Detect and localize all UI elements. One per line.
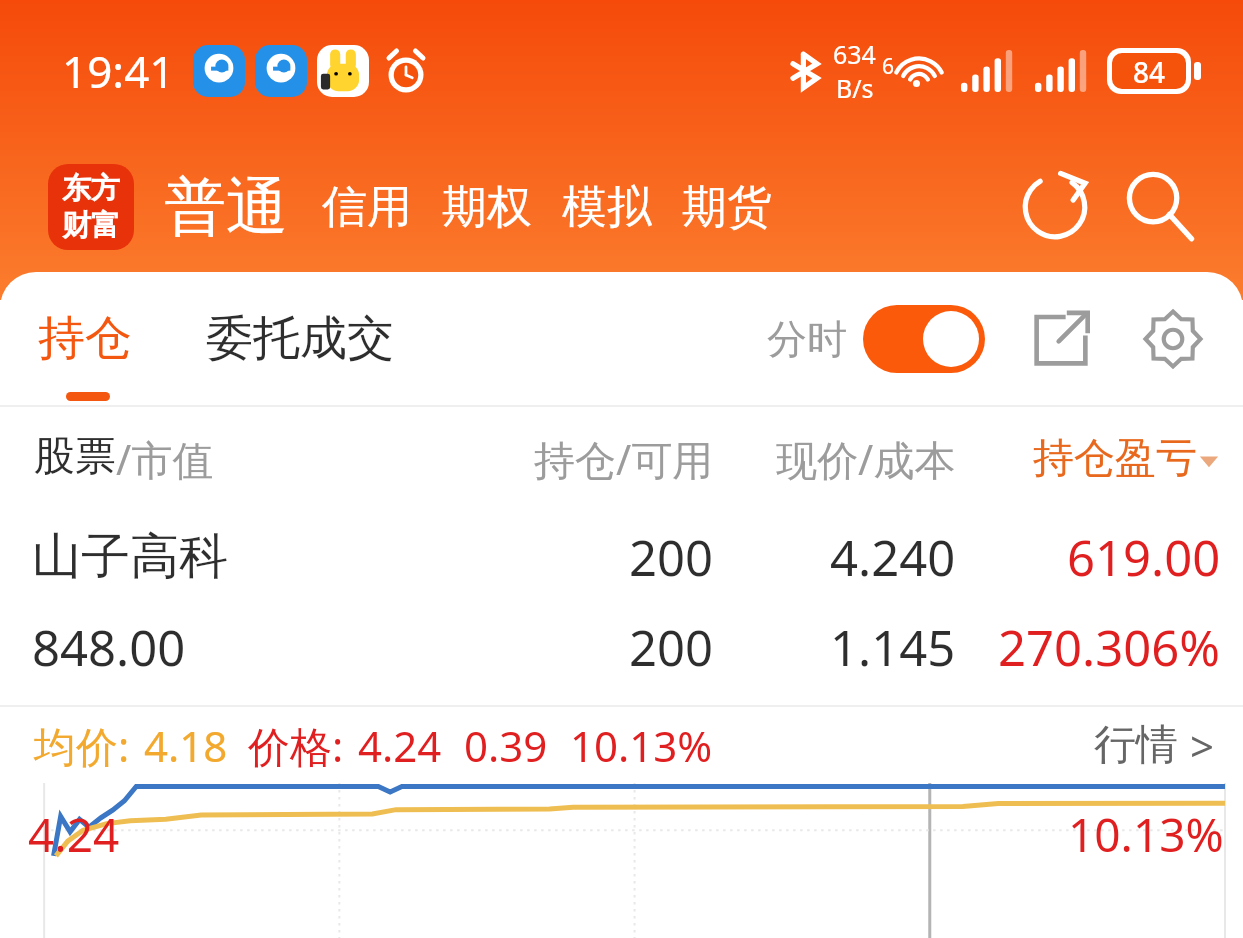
staticText: 200: [629, 614, 714, 681]
staticText: 持仓盈亏: [1033, 433, 1197, 485]
staticText: 6: [882, 52, 895, 81]
staticText: 4.24: [28, 803, 120, 866]
staticText: 山子高科: [32, 526, 228, 588]
staticText: 价格:: [248, 717, 344, 774]
button[interactable]: 期权: [438, 169, 536, 246]
button[interactable]: Refresh: [1009, 161, 1101, 253]
button[interactable]: Share: [1021, 299, 1101, 379]
staticText: 模拟: [562, 179, 652, 236]
staticText: 619.00: [1067, 524, 1221, 591]
staticText: 股票: [34, 431, 116, 483]
staticText: /市值: [116, 431, 214, 487]
staticText: 84: [1133, 53, 1166, 89]
staticText: B/s: [836, 71, 874, 105]
staticText: 行情: [1094, 719, 1178, 772]
staticText: 4.240: [830, 524, 956, 591]
staticText: 财富: [62, 207, 120, 244]
button[interactable]: 期货: [678, 169, 776, 246]
staticText: 持仓/可用: [534, 431, 714, 487]
staticText: 信用: [322, 179, 412, 236]
staticText: 10.13%: [570, 717, 713, 774]
button[interactable]: 东方: [48, 164, 134, 250]
button[interactable]: Chart toggle: [863, 305, 985, 373]
staticText: 848.00: [32, 614, 186, 681]
button[interactable]: Search: [1111, 159, 1207, 255]
staticText: 200: [629, 524, 714, 591]
staticText: 普通: [164, 168, 288, 246]
button[interactable]: 模拟: [558, 169, 656, 246]
staticText: 均价:: [34, 717, 130, 774]
staticText: 634: [833, 37, 876, 71]
staticText: 期权: [442, 179, 532, 236]
staticText: 0.39: [464, 717, 548, 774]
button[interactable]: 持仓: [34, 299, 136, 378]
staticText: 东方: [62, 170, 120, 207]
button[interactable]: 委托成交: [202, 299, 398, 378]
button[interactable]: Settings: [1131, 297, 1215, 381]
staticText: 期货: [682, 179, 772, 236]
button[interactable]: 持仓盈亏: [956, 433, 1221, 485]
button[interactable]: 山子高科: [0, 511, 1243, 705]
staticText: 4.24: [358, 717, 442, 774]
staticText: 2.05: [34, 935, 118, 938]
button[interactable]: 信用: [318, 169, 416, 246]
staticText: 分时: [767, 314, 847, 364]
staticText: >: [1190, 717, 1215, 774]
staticText: 19:41: [62, 41, 175, 101]
button[interactable]: 行情: [1090, 709, 1219, 782]
staticText: 10.13%: [1068, 803, 1224, 866]
staticText: 270.306%: [998, 614, 1221, 681]
staticText: 持仓: [38, 309, 132, 368]
staticText: 现价/成本: [776, 431, 956, 487]
staticText: 1.145: [830, 614, 956, 681]
staticText: 委托成交: [206, 309, 394, 368]
staticText: 4.18: [144, 717, 228, 774]
